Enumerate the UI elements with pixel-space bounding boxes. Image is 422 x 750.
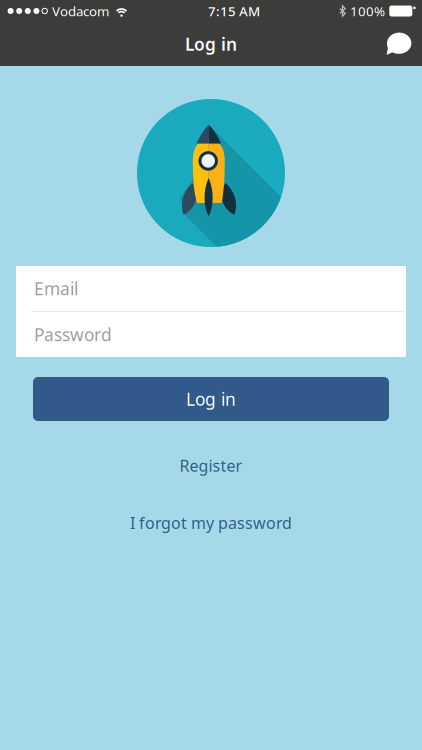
staticText: Log in xyxy=(185,32,237,55)
staticText: 7:15 AM xyxy=(208,2,260,20)
staticText: Email xyxy=(34,277,78,300)
staticText: Vodacom xyxy=(52,2,109,20)
button[interactable]: I forgot my password xyxy=(106,504,316,541)
button[interactable]: Log in xyxy=(33,377,389,421)
button[interactable]: Register xyxy=(155,447,266,484)
button[interactable]: Messages xyxy=(372,22,422,65)
button[interactable]: Email xyxy=(16,266,406,311)
staticText: Register xyxy=(179,455,242,476)
staticText: 100% xyxy=(350,2,385,20)
button[interactable]: Password xyxy=(16,312,406,357)
staticText: Log in xyxy=(186,387,236,410)
staticText: I forgot my password xyxy=(130,512,292,533)
staticText: Password xyxy=(34,323,112,346)
